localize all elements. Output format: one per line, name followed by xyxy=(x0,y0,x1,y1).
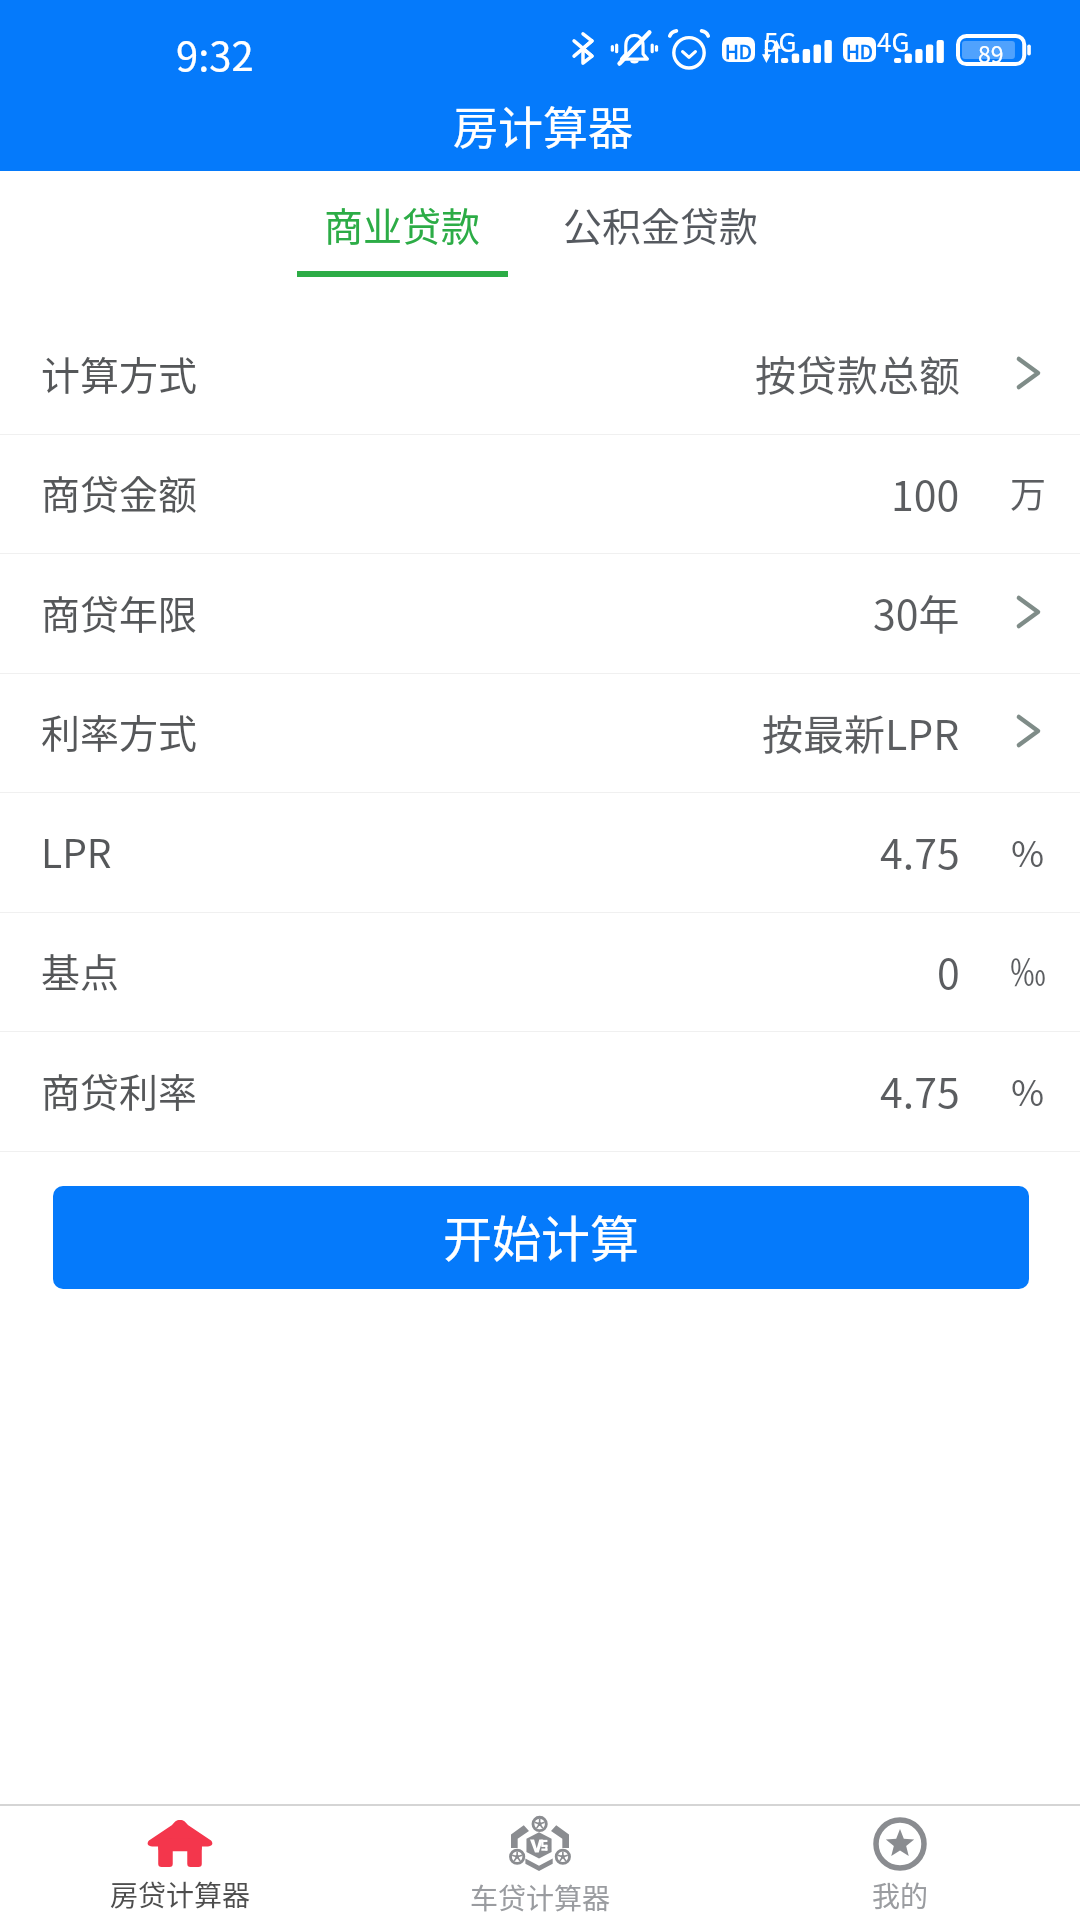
staticText: 万 xyxy=(1010,466,1047,518)
button[interactable]: 房贷计算器 xyxy=(0,1806,360,1920)
button[interactable]: 商贷年限 xyxy=(0,554,1080,674)
button[interactable]: 我的 xyxy=(720,1806,1080,1920)
staticText: 商业贷款 xyxy=(324,196,481,252)
staticText: 4.75 xyxy=(880,821,960,880)
button[interactable]: 开始计算 xyxy=(53,1186,1029,1289)
staticText: 房计算器 xyxy=(453,93,634,158)
button[interactable]: 计算方式 xyxy=(0,315,1080,435)
staticText: ‰ xyxy=(1010,944,1047,996)
staticText: 商贷金额 xyxy=(41,464,198,520)
button[interactable]: 基点 xyxy=(0,913,1080,1032)
staticText: 按最新LPR xyxy=(762,702,960,761)
other: 我的 xyxy=(870,1819,930,1869)
staticText: 30年 xyxy=(873,582,960,641)
staticText: 4.75 xyxy=(880,1060,960,1119)
staticText: 计算方式 xyxy=(41,345,198,401)
staticText: HD xyxy=(846,37,873,62)
staticText: LPR xyxy=(41,823,112,879)
staticText: 商贷年限 xyxy=(41,584,198,640)
staticText: 按贷款总额 xyxy=(755,343,960,402)
staticText: 利率方式 xyxy=(41,703,198,759)
button[interactable]: 公积金贷款 xyxy=(533,181,789,271)
other: 车贷计算器 xyxy=(511,1819,569,1871)
staticText: 9:32 xyxy=(176,25,254,83)
staticText: 0 xyxy=(937,941,960,1000)
staticText: 开始计算 xyxy=(443,1200,640,1271)
staticText: 车贷计算器 xyxy=(470,1877,611,1918)
staticText: HD xyxy=(725,37,752,62)
staticText: 基点 xyxy=(41,942,120,998)
staticText: 商贷利率 xyxy=(41,1062,198,1118)
staticText: 房贷计算器 xyxy=(110,1874,251,1915)
staticText: 89 xyxy=(978,36,1004,64)
staticText: 我的 xyxy=(872,1875,929,1916)
button[interactable]: 商贷利率 xyxy=(0,1032,1080,1152)
staticText: 4G xyxy=(877,22,910,60)
staticText: 公积金贷款 xyxy=(563,196,759,252)
staticText: 100 xyxy=(891,463,960,522)
other: 房贷计算器 xyxy=(147,1819,213,1868)
button[interactable]: 车贷计算器 xyxy=(360,1806,720,1920)
button[interactable]: 商业贷款 xyxy=(297,181,508,301)
staticText: 5G xyxy=(764,22,797,60)
button[interactable]: 利率方式 xyxy=(0,674,1080,793)
button[interactable]: 商贷金额 xyxy=(0,435,1080,554)
button[interactable]: LPR xyxy=(0,793,1080,913)
staticText: % xyxy=(1011,825,1045,877)
staticText: % xyxy=(1011,1064,1045,1116)
